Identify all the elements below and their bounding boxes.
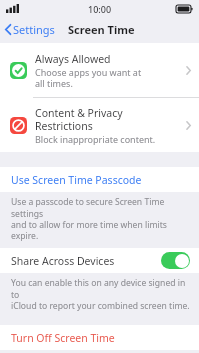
button[interactable]: Share Across Devices (161, 252, 190, 269)
other: Content & Privacy Restrictions (186, 121, 191, 130)
button[interactable]: Settings (0, 18, 61, 41)
staticText: Choose apps you want at all times. (35, 66, 142, 89)
button[interactable]: Always Allowed (0, 43, 199, 97)
staticText: Content & Privacy Restrictions (35, 106, 123, 133)
staticText: Settings (13, 22, 55, 37)
button[interactable]: Turn Off Screen Time (0, 325, 199, 350)
button[interactable]: Content & Privacy Restrictions (0, 98, 199, 152)
staticText: Share Across Devices (11, 254, 115, 268)
staticText: Block inappropriate content. (35, 133, 156, 145)
staticText: Use Screen Time Passcode (11, 173, 142, 187)
staticText: Use a passcode to secure Screen Time set… (11, 196, 194, 241)
button[interactable]: Use Screen Time Passcode (0, 167, 199, 192)
button[interactable]: Share Across Devices (0, 248, 199, 273)
staticText: Screen Time (68, 22, 135, 37)
staticText: Always Allowed (35, 52, 111, 66)
staticText: You can enable this on any device signed… (11, 277, 194, 311)
other: Always Allowed (186, 66, 191, 75)
staticText: 10:00 (88, 3, 112, 15)
staticText: Turn Off Screen Time (11, 331, 115, 345)
